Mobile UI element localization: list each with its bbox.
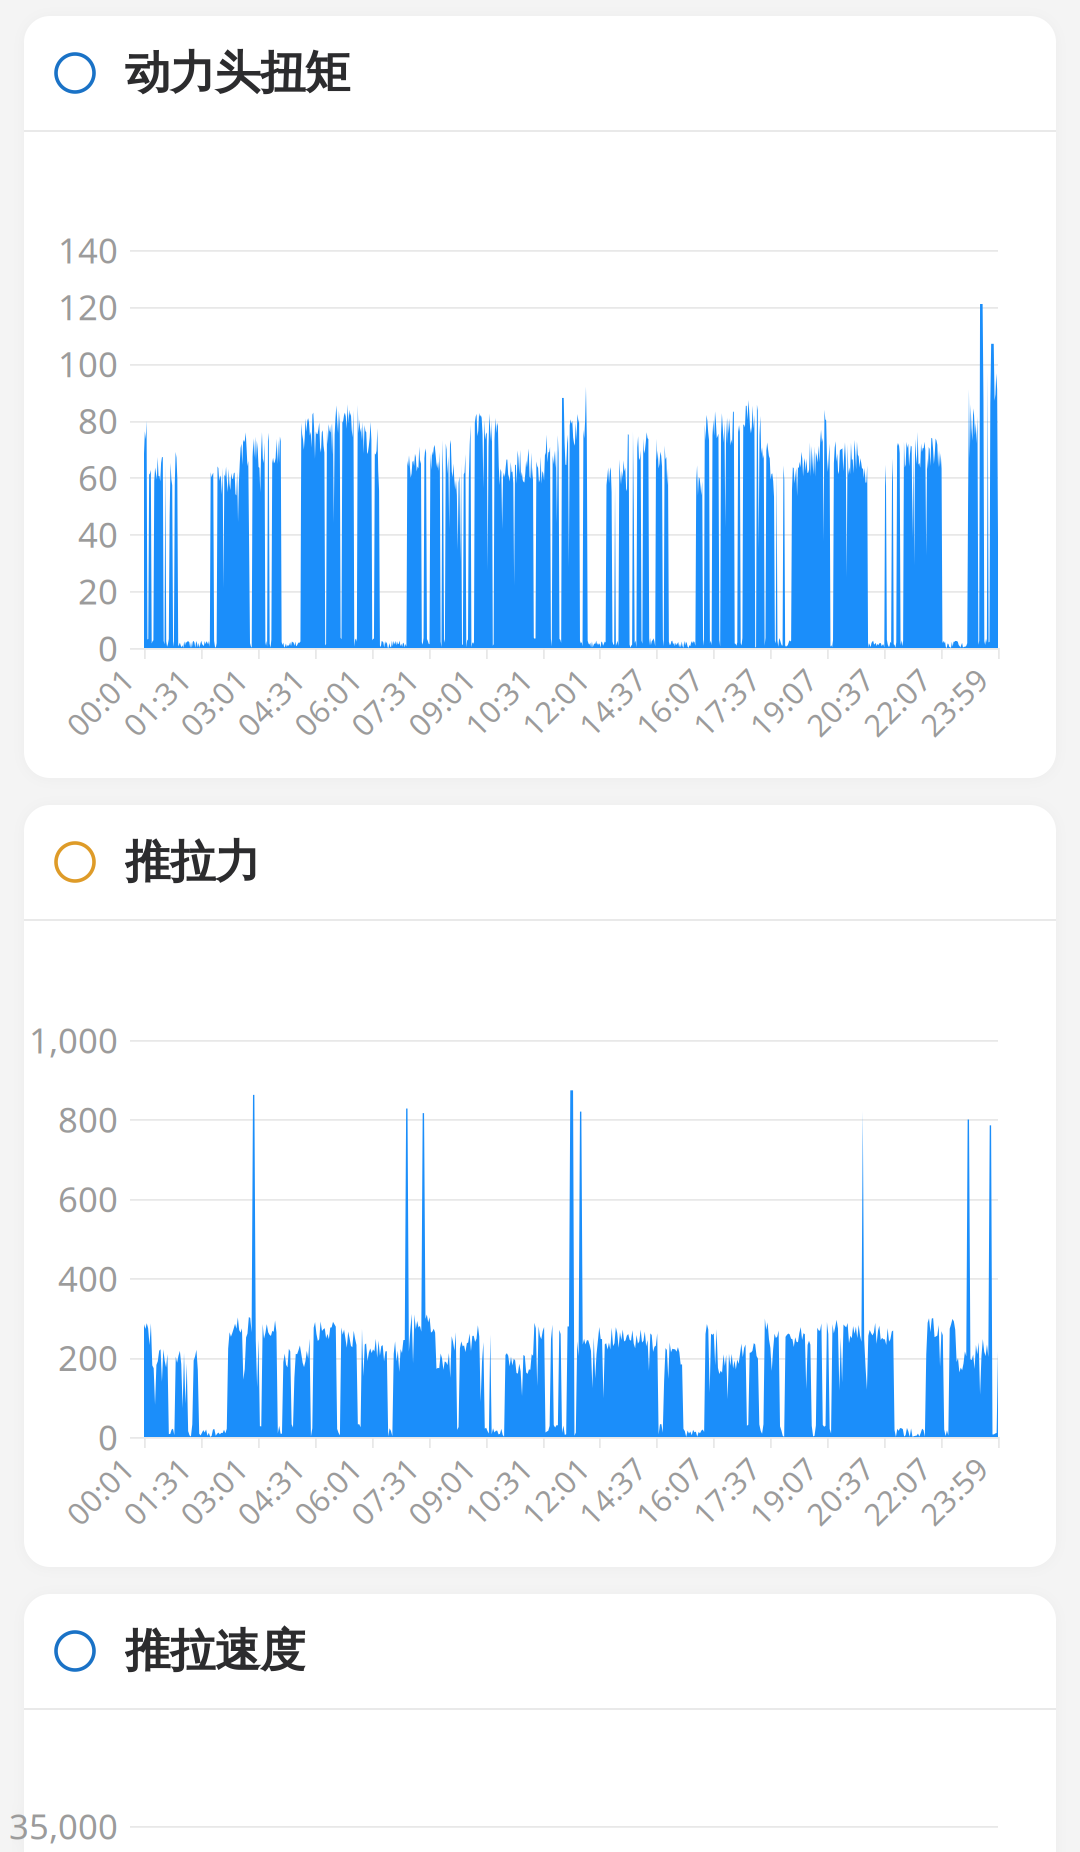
staticText: 07:31 xyxy=(345,1471,425,1511)
staticText: 00:01 xyxy=(60,1471,140,1511)
button[interactable]: 动力头扭矩 xyxy=(24,16,1056,130)
staticText: 01:31 xyxy=(117,682,197,722)
staticText: 60 xyxy=(78,454,118,500)
staticText: 推拉速度 xyxy=(125,1623,305,1679)
staticText: 23:59 xyxy=(914,1471,994,1511)
staticText: 23:59 xyxy=(914,682,994,722)
staticText: 06:01 xyxy=(288,1471,368,1511)
staticText: 06:01 xyxy=(288,682,368,722)
staticText: 04:31 xyxy=(231,1471,311,1511)
staticText: 200 xyxy=(58,1335,118,1381)
staticText: 19:07 xyxy=(743,682,823,722)
staticText: 400 xyxy=(58,1255,118,1301)
staticText: 1,000 xyxy=(29,1017,118,1063)
staticText: 10:31 xyxy=(458,1471,538,1511)
staticText: 04:31 xyxy=(231,682,311,722)
staticText: 03:01 xyxy=(174,682,254,722)
staticText: 80 xyxy=(78,398,118,444)
staticText: 0 xyxy=(98,1414,118,1460)
staticText: 22:07 xyxy=(857,682,937,722)
staticText: 12:01 xyxy=(515,682,595,722)
staticText: 16:07 xyxy=(629,1471,709,1511)
staticText: 0 xyxy=(98,625,118,671)
button[interactable]: 推拉力 xyxy=(24,805,1056,919)
staticText: 17:37 xyxy=(686,682,766,722)
staticText: 22:07 xyxy=(857,1471,937,1511)
staticText: 12:01 xyxy=(515,1471,595,1511)
staticText: 20:37 xyxy=(800,682,880,722)
staticText: 01:31 xyxy=(117,1471,197,1511)
staticText: 800 xyxy=(58,1096,118,1142)
staticText: 17:37 xyxy=(686,1471,766,1511)
staticText: 20:37 xyxy=(800,1471,880,1511)
staticText: 16:07 xyxy=(629,682,709,722)
staticText: 20 xyxy=(78,568,118,614)
staticText: 120 xyxy=(58,284,118,330)
staticText: 09:01 xyxy=(402,1471,482,1511)
staticText: 100 xyxy=(58,341,118,387)
staticText: 动力头扭矩 xyxy=(125,45,350,101)
staticText: 35,000 xyxy=(9,1803,118,1849)
staticText: 推拉力 xyxy=(125,834,260,890)
button[interactable]: 推拉速度 xyxy=(24,1594,1056,1708)
staticText: 10:31 xyxy=(458,682,538,722)
staticText: 140 xyxy=(58,227,118,273)
staticText: 14:37 xyxy=(572,1471,652,1511)
staticText: 09:01 xyxy=(402,682,482,722)
staticText: 19:07 xyxy=(743,1471,823,1511)
staticText: 03:01 xyxy=(174,1471,254,1511)
staticText: 14:37 xyxy=(572,682,652,722)
staticText: 600 xyxy=(58,1176,118,1222)
staticText: 40 xyxy=(78,511,118,557)
staticText: 07:31 xyxy=(345,682,425,722)
staticText: 00:01 xyxy=(60,682,140,722)
